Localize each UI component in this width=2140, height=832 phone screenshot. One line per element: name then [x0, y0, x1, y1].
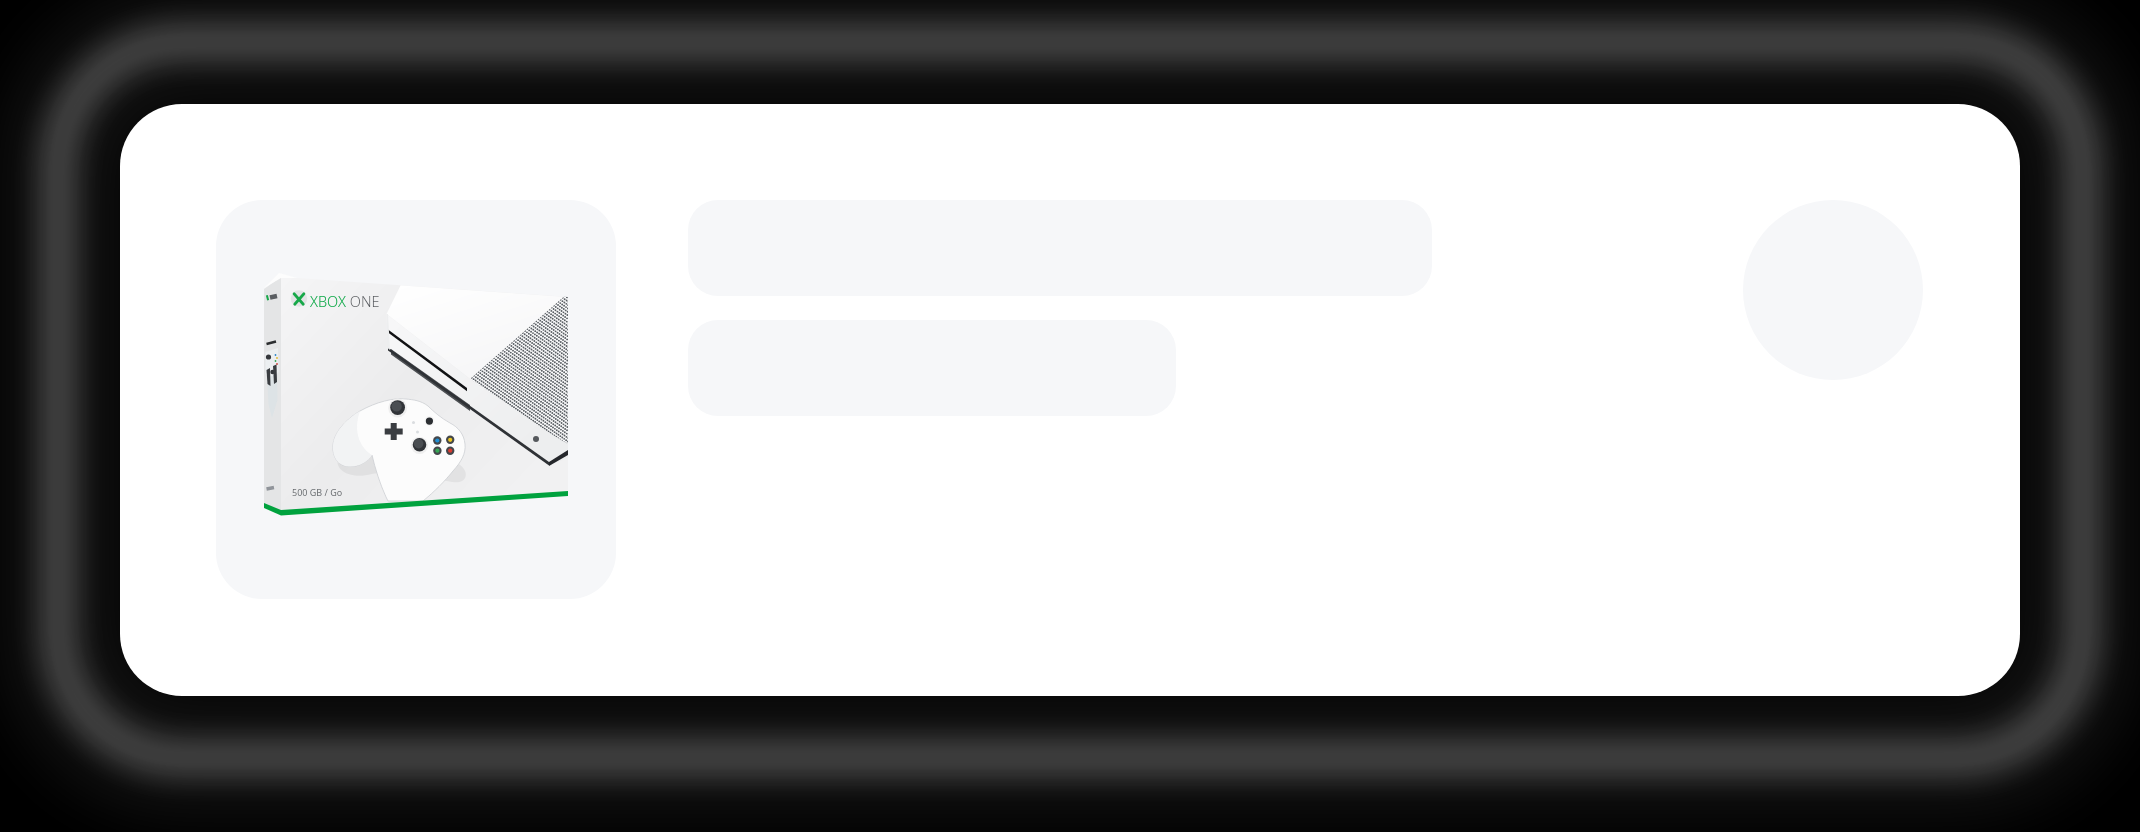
button[interactable]: More options	[1743, 200, 1923, 380]
button[interactable]: Xbox One S 500 GB console bundle	[120, 104, 2020, 696]
button[interactable]: Xbox One S 500 GB console bundle	[216, 200, 616, 599]
